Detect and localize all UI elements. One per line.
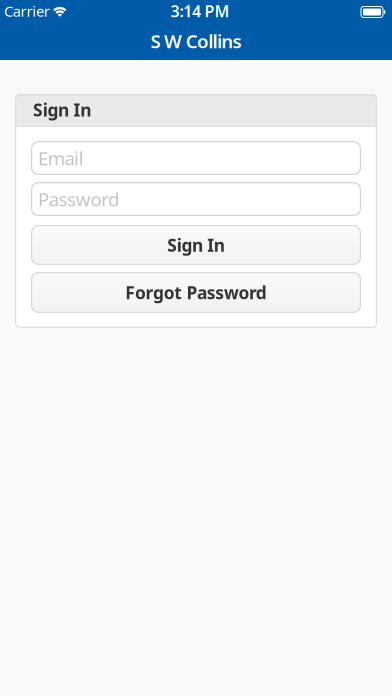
staticText: Carrier (4, 1, 50, 21)
staticText: Forgot Password (125, 281, 267, 304)
staticText: 3:14 PM (171, 0, 229, 22)
staticText: Password (38, 187, 119, 211)
staticText: Sign In (33, 98, 91, 121)
button[interactable]: Email text field (31, 141, 361, 175)
button[interactable]: Forgot Password (31, 272, 361, 313)
button[interactable]: Password text field (31, 182, 361, 216)
staticText: S W Collins (150, 29, 241, 53)
button[interactable]: Sign In (31, 225, 361, 265)
staticText: Sign In (167, 233, 225, 256)
staticText: Email (38, 146, 84, 170)
